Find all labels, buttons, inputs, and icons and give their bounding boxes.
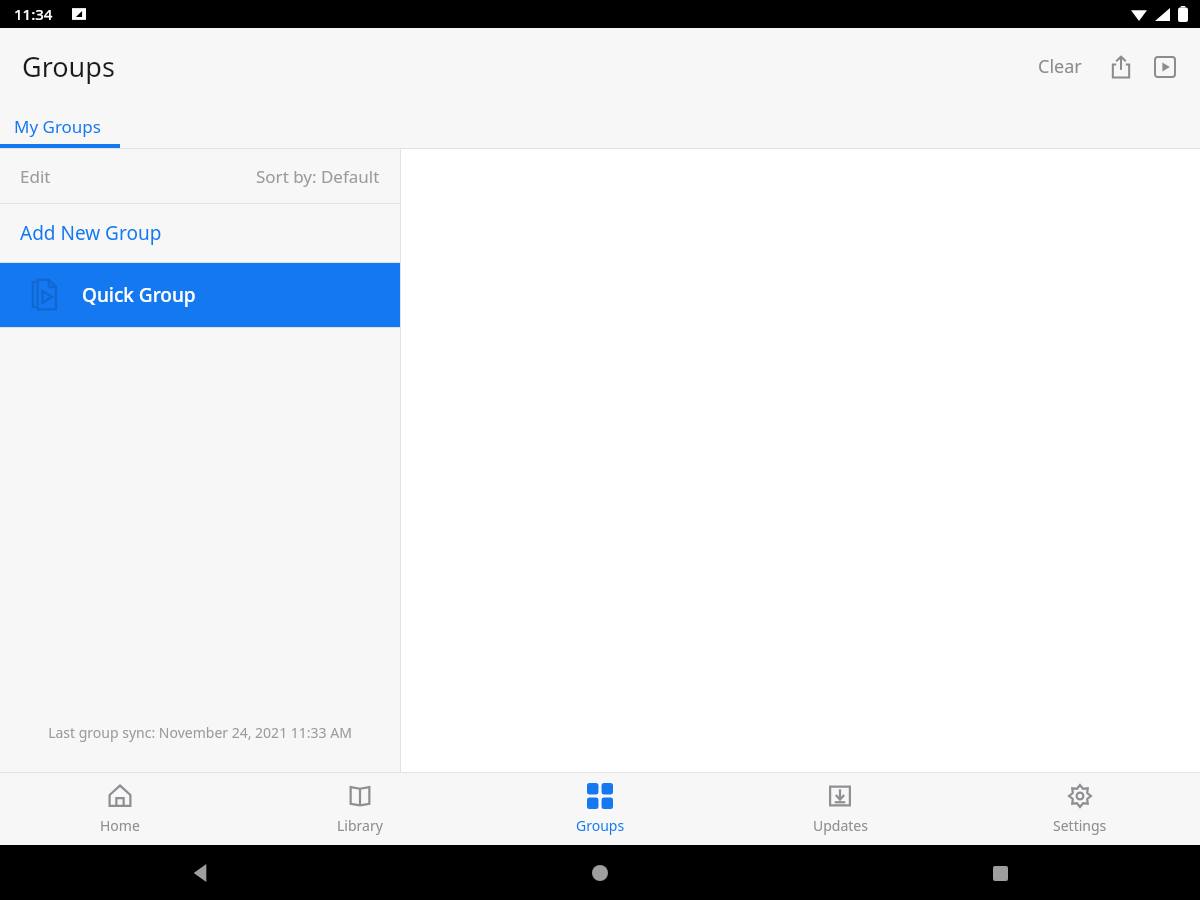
staticText: Edit: [20, 165, 51, 188]
button[interactable]: Home: [580, 853, 620, 893]
staticText: Sort by: Default: [256, 165, 380, 188]
staticText: My Groups: [14, 115, 101, 138]
button[interactable]: My Groups: [0, 104, 115, 148]
staticText: Last group sync: November 24, 2021 11:33…: [48, 723, 352, 742]
staticText: Clear: [1038, 54, 1082, 79]
button[interactable]: Sort by: Default: [236, 149, 400, 203]
staticText: Library: [337, 816, 383, 835]
staticText: Groups: [576, 816, 625, 835]
staticText: Home: [100, 816, 140, 835]
button[interactable]: Updates: [720, 773, 960, 845]
button[interactable]: Play: [1148, 50, 1182, 84]
button[interactable]: Share: [1104, 50, 1138, 84]
button[interactable]: Home: [0, 773, 240, 845]
staticText: Quick Group: [82, 282, 196, 308]
staticText: 11:34: [14, 4, 53, 24]
button[interactable]: Clear: [1030, 48, 1090, 85]
button[interactable]: Back: [180, 853, 220, 893]
button[interactable]: Add New Group: [0, 204, 400, 262]
staticText: Updates: [813, 816, 868, 835]
staticText: Settings: [1053, 816, 1107, 835]
staticText: Groups: [22, 48, 115, 85]
staticText: Add New Group: [20, 220, 162, 246]
button[interactable]: Library: [240, 773, 480, 845]
button[interactable]: Groups: [480, 773, 720, 845]
button[interactable]: Settings: [960, 773, 1200, 845]
button[interactable]: Recents: [980, 853, 1020, 893]
button[interactable]: Edit: [0, 149, 71, 203]
button[interactable]: Quick Group: [0, 263, 400, 327]
